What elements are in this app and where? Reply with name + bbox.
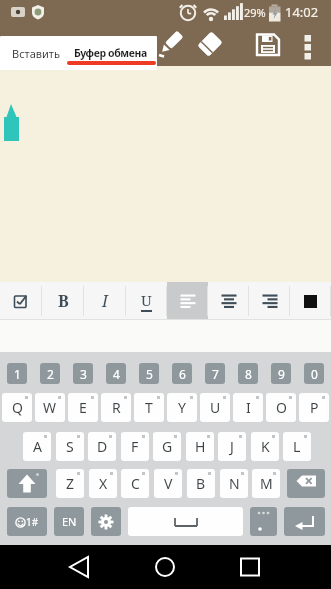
button[interactable]: F	[121, 432, 149, 461]
button[interactable]	[57, 549, 101, 585]
button[interactable]: H	[186, 432, 214, 461]
staticText: 14:02	[285, 3, 319, 21]
button[interactable]: P	[299, 393, 329, 422]
button[interactable]: I	[84, 282, 126, 320]
button[interactable]	[249, 282, 290, 320]
button[interactable]: S	[56, 432, 84, 461]
button[interactable]: U	[200, 393, 230, 422]
staticText: 4	[113, 366, 120, 382]
staticText: 2	[47, 366, 54, 382]
button[interactable]: D	[88, 432, 116, 461]
button[interactable]	[0, 282, 42, 320]
staticText: O	[276, 398, 287, 417]
button[interactable]: Вставить	[12, 46, 60, 61]
staticText: H	[195, 437, 206, 456]
staticText: U	[141, 290, 152, 310]
button[interactable]: J	[218, 432, 246, 461]
staticText: D	[97, 437, 108, 456]
button[interactable]: M	[252, 469, 280, 498]
button[interactable]	[7, 469, 47, 498]
button[interactable]: Буфер обмена	[66, 36, 157, 70]
button[interactable]: Q	[2, 393, 32, 422]
button[interactable]: EN	[54, 507, 84, 536]
button[interactable]: W	[35, 393, 65, 422]
staticText: 6	[179, 366, 186, 382]
button[interactable]	[254, 30, 282, 58]
button[interactable]: Y	[167, 393, 197, 422]
button[interactable]	[196, 28, 226, 58]
button[interactable]: I	[233, 393, 263, 422]
button[interactable]: U	[126, 282, 167, 320]
button[interactable]: O	[266, 393, 296, 422]
button[interactable]: E	[68, 393, 98, 422]
button[interactable]: 2	[40, 363, 60, 384]
staticText: B	[196, 474, 206, 493]
button[interactable]	[143, 549, 187, 585]
button[interactable]: N	[220, 469, 248, 498]
button[interactable]	[290, 282, 331, 320]
staticText: U	[210, 398, 221, 417]
staticText: EN	[62, 514, 77, 529]
button[interactable]	[156, 28, 186, 58]
staticText: 29%	[244, 5, 266, 20]
button[interactable]: 3	[73, 363, 93, 384]
button[interactable]: A	[23, 432, 51, 461]
button[interactable]	[250, 507, 277, 536]
button[interactable]: G	[153, 432, 181, 461]
staticText: M	[260, 474, 273, 493]
button[interactable]: C	[121, 469, 149, 498]
button[interactable]	[208, 282, 249, 320]
button[interactable]: V	[154, 469, 182, 498]
staticText: J	[230, 437, 234, 456]
staticText: S	[66, 437, 74, 456]
button[interactable]	[228, 549, 272, 585]
staticText: Буфер обмена	[74, 46, 147, 60]
staticText: Y	[178, 398, 186, 417]
staticText: 7	[212, 366, 219, 382]
staticText: X	[99, 474, 108, 493]
staticText: A	[33, 437, 42, 456]
staticText: B	[58, 290, 69, 312]
button[interactable]: 9	[271, 363, 291, 384]
button[interactable]	[287, 469, 325, 498]
button[interactable]: 5	[139, 363, 159, 384]
staticText: 8	[245, 366, 252, 382]
button[interactable]: 1#	[7, 507, 47, 536]
staticText: E	[79, 398, 87, 417]
button[interactable]	[284, 507, 325, 536]
button[interactable]: 1	[7, 363, 27, 384]
button[interactable]	[128, 507, 243, 536]
staticText: L	[293, 437, 301, 456]
staticText: N	[229, 474, 240, 493]
staticText: R	[112, 398, 121, 417]
button[interactable]: 6	[172, 363, 192, 384]
staticText: V	[164, 474, 173, 493]
button[interactable]	[167, 282, 208, 320]
staticText: 1#	[26, 515, 39, 529]
button[interactable]: X	[89, 469, 117, 498]
button[interactable]	[91, 507, 121, 536]
button[interactable]: 8	[238, 363, 258, 384]
button[interactable]: B	[42, 282, 84, 320]
staticText: 0	[311, 366, 318, 382]
staticText: F	[131, 437, 139, 456]
button[interactable]: R	[101, 393, 131, 422]
staticText: C	[131, 474, 140, 493]
staticText: 1	[14, 366, 21, 382]
button[interactable]: Z	[56, 469, 84, 498]
staticText: I	[246, 398, 251, 417]
button[interactable]: K	[251, 432, 279, 461]
staticText: 9	[278, 366, 285, 382]
staticText: W	[43, 398, 57, 417]
button[interactable]: 0	[304, 363, 324, 384]
button[interactable]: L	[283, 432, 311, 461]
staticText: G	[162, 437, 173, 456]
staticText: 5	[146, 366, 153, 382]
staticText: 3	[80, 366, 87, 382]
button[interactable]: 4	[106, 363, 126, 384]
button[interactable]: B	[187, 469, 215, 498]
button[interactable]: 7	[205, 363, 225, 384]
staticText: T	[145, 398, 153, 417]
button[interactable]	[299, 32, 317, 58]
button[interactable]: T	[134, 393, 164, 422]
